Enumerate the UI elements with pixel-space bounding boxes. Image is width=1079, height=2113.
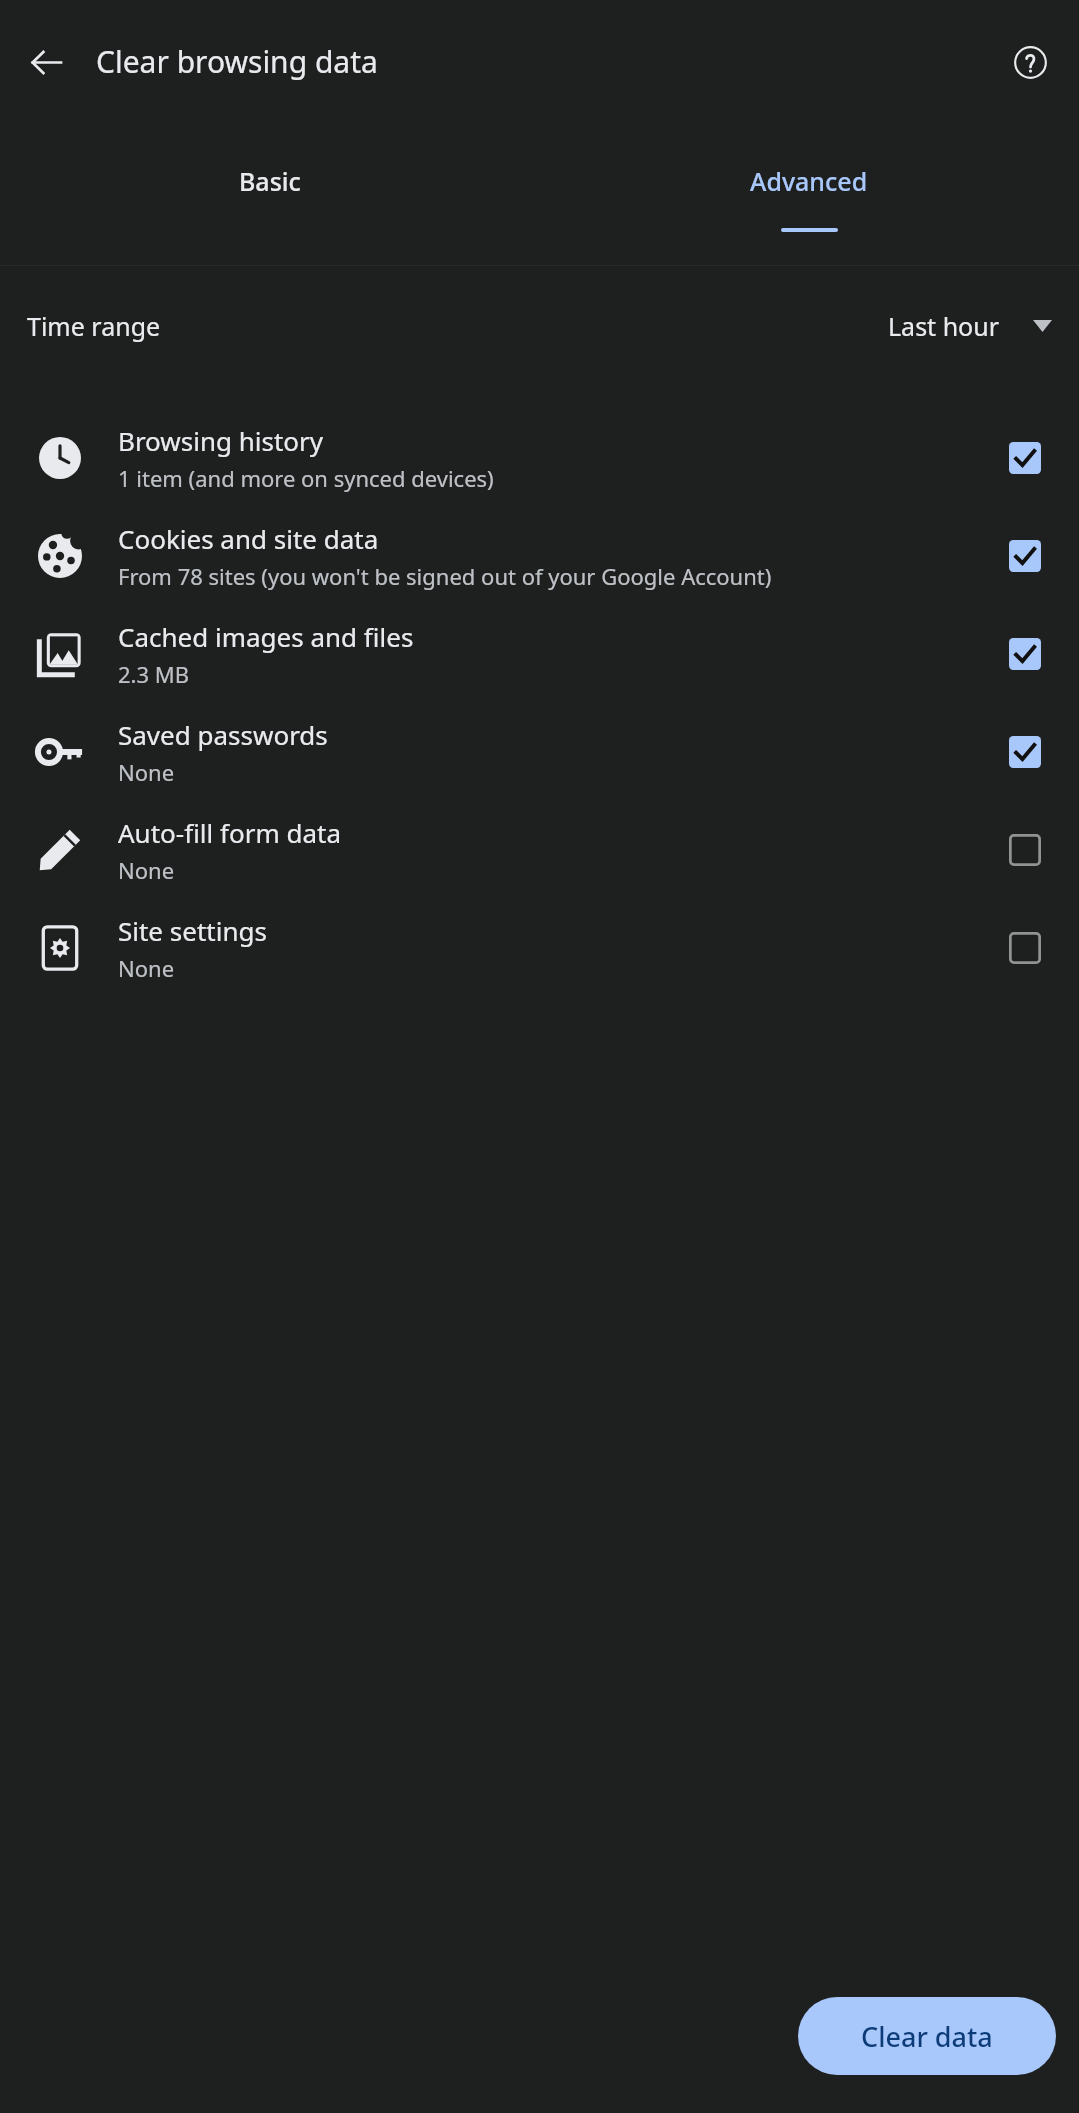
button[interactable]: Advanced: [539, 123, 1079, 265]
button[interactable]: Basic: [0, 123, 539, 265]
staticText: Browsing history: [118, 423, 324, 458]
button[interactable]: Site settings: [0, 899, 1079, 997]
staticText: None: [118, 757, 175, 787]
button[interactable]: Checked: [995, 526, 1055, 586]
button[interactable]: Unchecked: [995, 820, 1055, 880]
staticText: Cached images and files: [118, 619, 414, 654]
button[interactable]: Checked: [995, 722, 1055, 782]
staticText: Cookies and site data: [118, 521, 379, 556]
button[interactable]: Checked: [995, 624, 1055, 684]
button[interactable]: Checked: [995, 428, 1055, 488]
button[interactable]: Cached images and files: [0, 605, 1079, 703]
button[interactable]: Help: [998, 30, 1062, 94]
staticText: Site settings: [118, 913, 267, 948]
staticText: None: [118, 953, 175, 983]
staticText: 2.3 MB: [118, 659, 190, 689]
staticText: None: [118, 855, 175, 885]
button[interactable]: Browsing history: [0, 409, 1079, 507]
button[interactable]: Time range: [0, 266, 1079, 385]
button[interactable]: Cookies and site data: [0, 507, 1079, 605]
button[interactable]: Back: [14, 30, 78, 94]
staticText: Advanced: [750, 164, 868, 198]
staticText: Time range: [27, 309, 161, 343]
button[interactable]: Auto-fill form data: [0, 801, 1079, 899]
staticText: Last hour: [888, 309, 999, 343]
staticText: 1 item (and more on synced devices): [118, 463, 494, 493]
button[interactable]: Clear data: [798, 1997, 1056, 2075]
button[interactable]: Unchecked: [995, 918, 1055, 978]
staticText: Clear browsing data: [96, 41, 378, 82]
staticText: Basic: [239, 164, 301, 198]
staticText: Saved passwords: [118, 717, 328, 752]
staticText: Auto-fill form data: [118, 815, 342, 850]
button[interactable]: Saved passwords: [0, 703, 1079, 801]
staticText: Clear data: [861, 2018, 993, 2055]
staticText: From 78 sites (you won't be signed out o…: [118, 561, 772, 591]
